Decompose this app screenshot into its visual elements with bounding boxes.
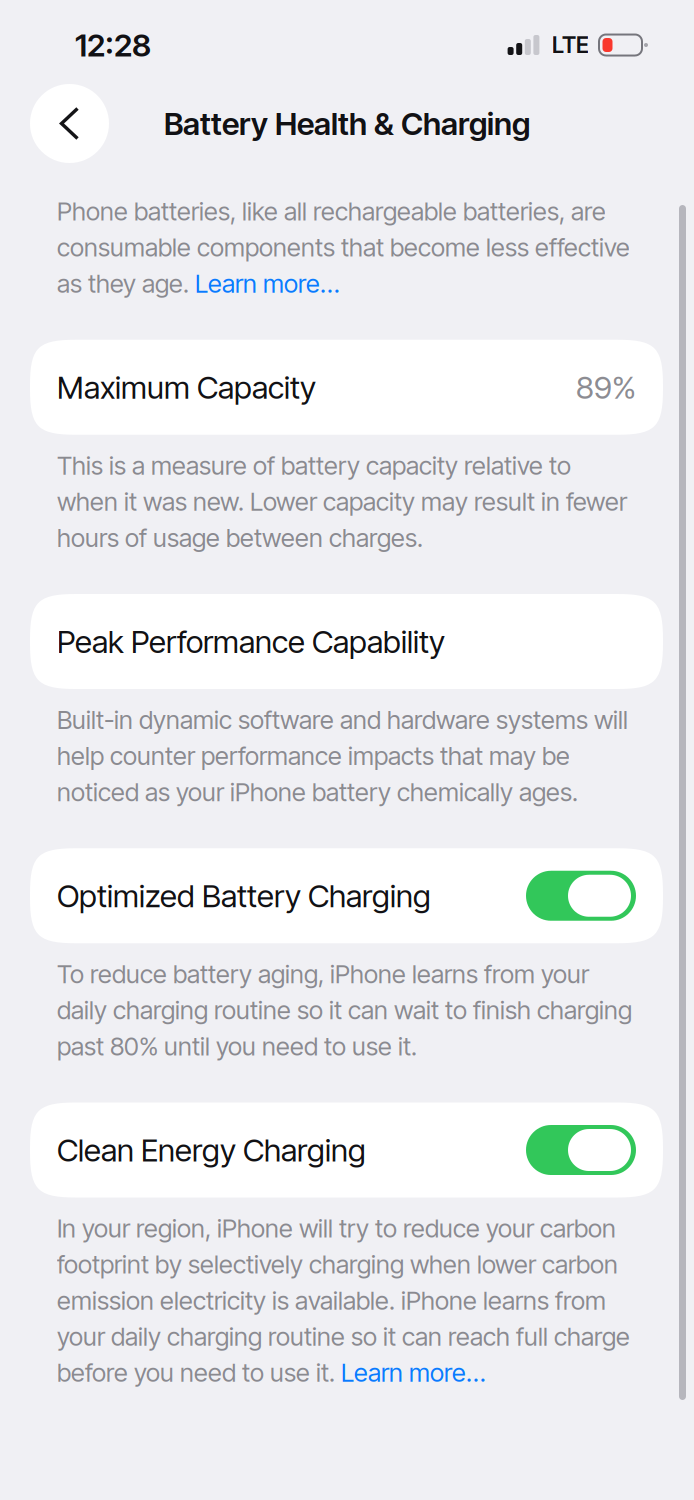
staticText: This is a measure of battery capacity re… xyxy=(57,450,627,553)
staticText: LTE xyxy=(552,31,589,59)
button[interactable]: Back xyxy=(30,84,109,163)
staticText: Battery Health & Charging xyxy=(164,104,530,142)
staticText: Phone batteries, like all rechargeable b… xyxy=(57,196,630,299)
button[interactable]: Peak Performance Capability xyxy=(30,594,663,689)
staticText: 89% xyxy=(576,368,636,406)
staticText: Peak Performance Capability xyxy=(57,623,445,660)
staticText: 12:28 xyxy=(75,26,151,64)
staticText: Maximum Capacity xyxy=(57,368,316,406)
staticText: In your region, iPhone will try to reduc… xyxy=(57,1213,630,1388)
button[interactable]: Optimized Battery Charging xyxy=(30,848,663,943)
button[interactable]: Maximum Capacity xyxy=(30,340,663,435)
staticText: Built-in dynamic software and hardware s… xyxy=(57,704,628,807)
staticText: Clean Energy Charging xyxy=(57,1131,366,1169)
button[interactable]: Clean Energy Charging xyxy=(30,1102,663,1197)
staticText: Optimized Battery Charging xyxy=(57,877,431,915)
staticText: To reduce battery aging, iPhone learns f… xyxy=(57,959,632,1062)
